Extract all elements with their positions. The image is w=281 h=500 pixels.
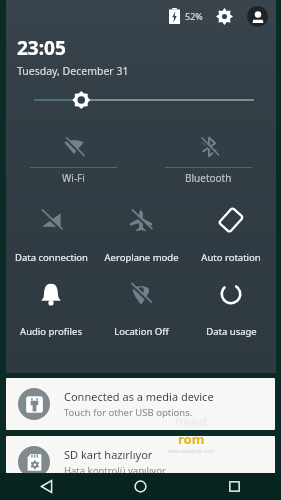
staticText: Wi-Fi [62, 171, 85, 185]
button[interactable]: Location Off [96, 268, 186, 342]
button[interactable]: Home [93, 473, 187, 500]
staticText: rom [178, 430, 205, 448]
staticText: 23:05 [17, 35, 66, 61]
button[interactable]: Recents [187, 473, 281, 500]
staticText: Location Off [114, 325, 169, 338]
staticText: Bluetooth [185, 171, 232, 185]
button[interactable]: Auto rotation [186, 194, 276, 268]
staticText: Tuesday, December 31 [17, 64, 129, 78]
button[interactable]: Wi-Fi [6, 126, 141, 188]
staticText: Audio profiles [20, 325, 82, 338]
button[interactable]: Data usage [186, 268, 276, 342]
staticText: SD kart hazırlıyor [64, 447, 153, 462]
staticText: Hata kontrolü yapılıyor [64, 464, 166, 477]
staticText: 52% [185, 10, 203, 22]
staticText: Data connection [15, 251, 88, 264]
button[interactable]: User profile [247, 6, 268, 27]
staticText: Aeroplane mode [104, 251, 179, 264]
staticText: www.needrom.com [168, 448, 214, 455]
staticText: Connected as a media device [64, 389, 214, 404]
staticText: need [175, 412, 208, 430]
button[interactable]: Data connection [6, 194, 96, 268]
button[interactable]: SD kart hazırlıyor [6, 436, 275, 488]
staticText: Auto rotation [201, 251, 261, 264]
button[interactable]: Back [0, 473, 93, 500]
button[interactable]: Bluetooth [141, 126, 276, 188]
staticText: Touch for other USB options. [64, 406, 193, 419]
button[interactable]: Brightness [6, 86, 276, 114]
button[interactable]: Aeroplane mode [96, 194, 186, 268]
button[interactable]: Audio profiles [6, 268, 96, 342]
button[interactable]: Settings [213, 5, 235, 27]
button[interactable]: Connected as a media device [6, 378, 275, 430]
staticText: Data usage [206, 325, 257, 338]
